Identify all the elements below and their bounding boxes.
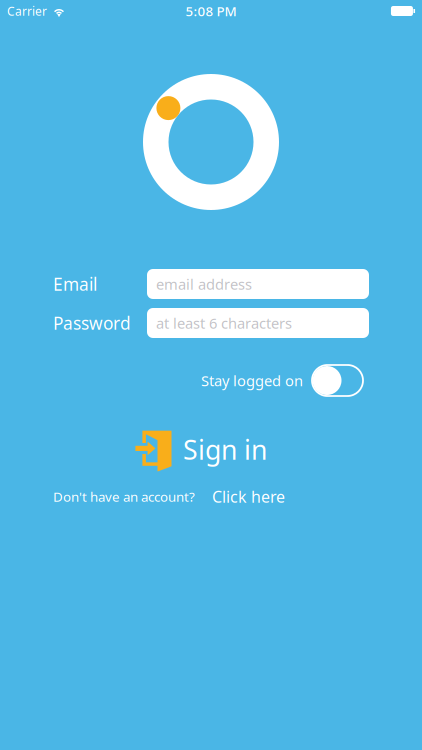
staticText: Password [53, 311, 131, 334]
staticText: Email [53, 272, 97, 295]
button[interactable]: Click here [212, 486, 285, 507]
staticText: Click here [212, 486, 285, 507]
staticText: Stay logged on [201, 371, 303, 390]
button[interactable]: email address [147, 269, 369, 299]
button[interactable]: Stay logged on [201, 365, 363, 396]
staticText: Carrier [7, 3, 47, 19]
staticText: at least 6 characters [156, 313, 292, 333]
staticText: 5:08 PM [185, 2, 236, 20]
staticText: email address [156, 274, 252, 294]
button[interactable]: Don't have an account? [53, 488, 195, 505]
button[interactable]: Sign in [134, 427, 267, 472]
staticText: Sign in [183, 432, 267, 467]
staticText: Don't have an account? [53, 488, 195, 505]
button[interactable]: at least 6 characters [147, 308, 369, 338]
